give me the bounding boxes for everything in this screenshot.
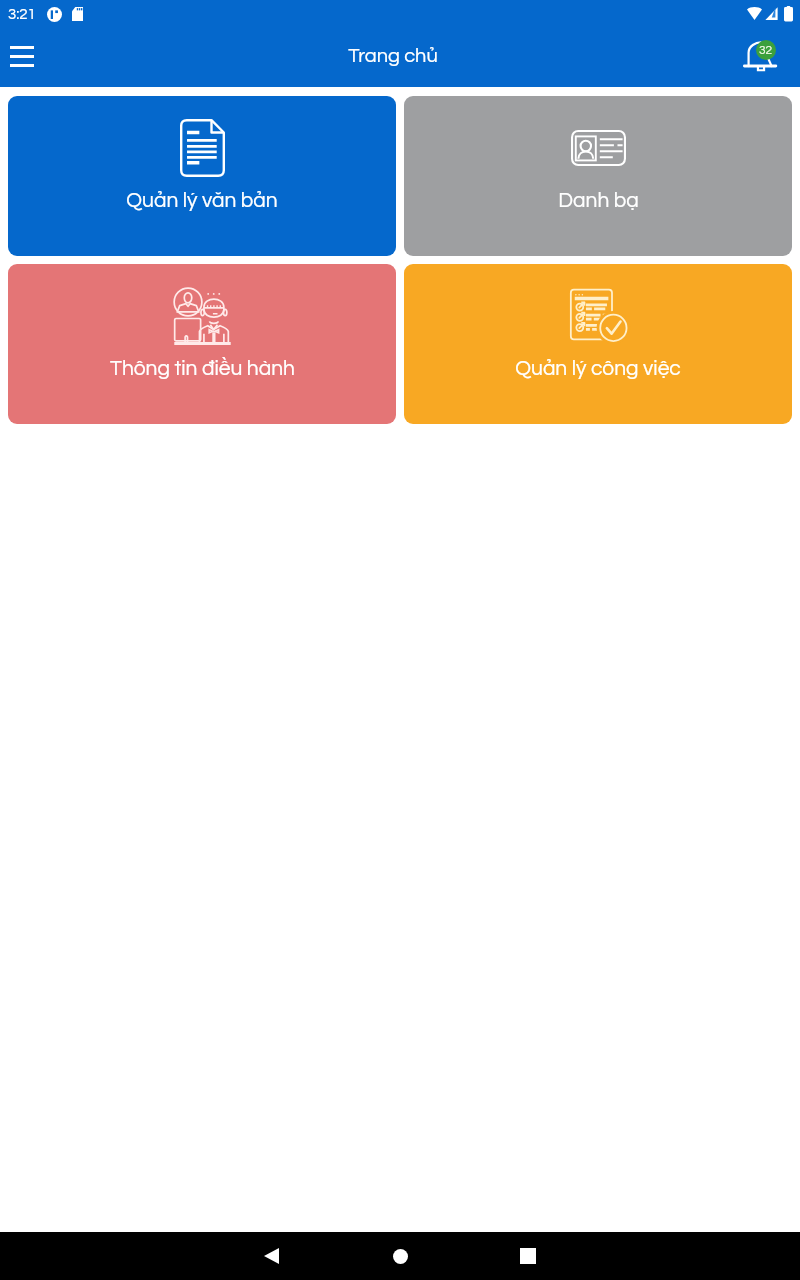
staticText: Quản lý công việc [515, 358, 681, 380]
staticText: 3:21 [8, 7, 36, 22]
button[interactable]: Quản lý công việc [404, 264, 792, 424]
button[interactable]: Menu [0, 28, 46, 87]
button[interactable]: Back [243, 1232, 299, 1280]
button[interactable]: Recents [500, 1232, 556, 1280]
button[interactable]: Quản lý văn bản [8, 96, 396, 256]
staticText: Quản lý văn bản [126, 190, 278, 212]
staticText: Trang chủ [348, 46, 438, 67]
button[interactable]: Danh bạ [404, 96, 792, 256]
button[interactable]: Thông tin điều hành [8, 264, 396, 424]
staticText: Danh bạ [558, 190, 639, 212]
button[interactable]: Notifications [734, 28, 800, 87]
staticText: 32 [759, 44, 773, 56]
button[interactable]: Home [372, 1232, 428, 1280]
staticText: Thông tin điều hành [110, 358, 295, 380]
